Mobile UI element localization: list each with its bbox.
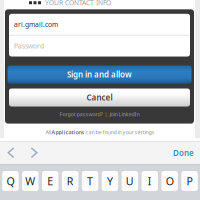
staticText: Y [107,174,113,188]
staticText: P [187,174,193,188]
button[interactable]: Y [102,171,118,191]
button[interactable]: R [62,171,78,191]
staticText: R [67,174,74,188]
staticText: Password [14,42,44,50]
button[interactable]: U [122,171,138,191]
staticText: E [47,174,53,188]
button[interactable]: Cancel [9,88,190,106]
staticText: Q [6,174,14,188]
staticText: All [45,129,51,136]
staticText: W [25,174,35,188]
staticText: T [87,174,93,188]
button[interactable]: Q [2,171,19,191]
staticText: Cancel [86,92,112,103]
button[interactable]: W [22,171,39,191]
button[interactable]: Forgot password? [59,110,102,118]
staticText: | [104,110,107,118]
button[interactable]: E [42,171,58,191]
staticText: can be found in your settings [84,129,154,136]
staticText: Applications [51,129,84,136]
button[interactable]: Sign in and allow [7,65,191,83]
staticText: U [126,174,134,188]
button[interactable]: T [82,171,98,191]
staticText: ari.gmail.com [14,20,58,29]
button[interactable]: I [141,171,158,191]
button[interactable]: Join LinkedIn [109,110,139,118]
staticText: Forgot password? [59,110,102,118]
staticText: Join LinkedIn [109,110,139,118]
button[interactable]: O [161,171,178,191]
button[interactable]: Done [173,141,200,165]
staticText: Done [173,148,194,158]
button[interactable]: Previous field [0,141,22,165]
button[interactable]: Next field [0,141,46,165]
staticText: YOUR CONTACT INFO [45,0,111,7]
staticText: O [166,174,174,188]
staticText: Sign in and allow [67,69,132,80]
staticText: I [148,174,152,188]
button[interactable]: P [181,171,198,191]
